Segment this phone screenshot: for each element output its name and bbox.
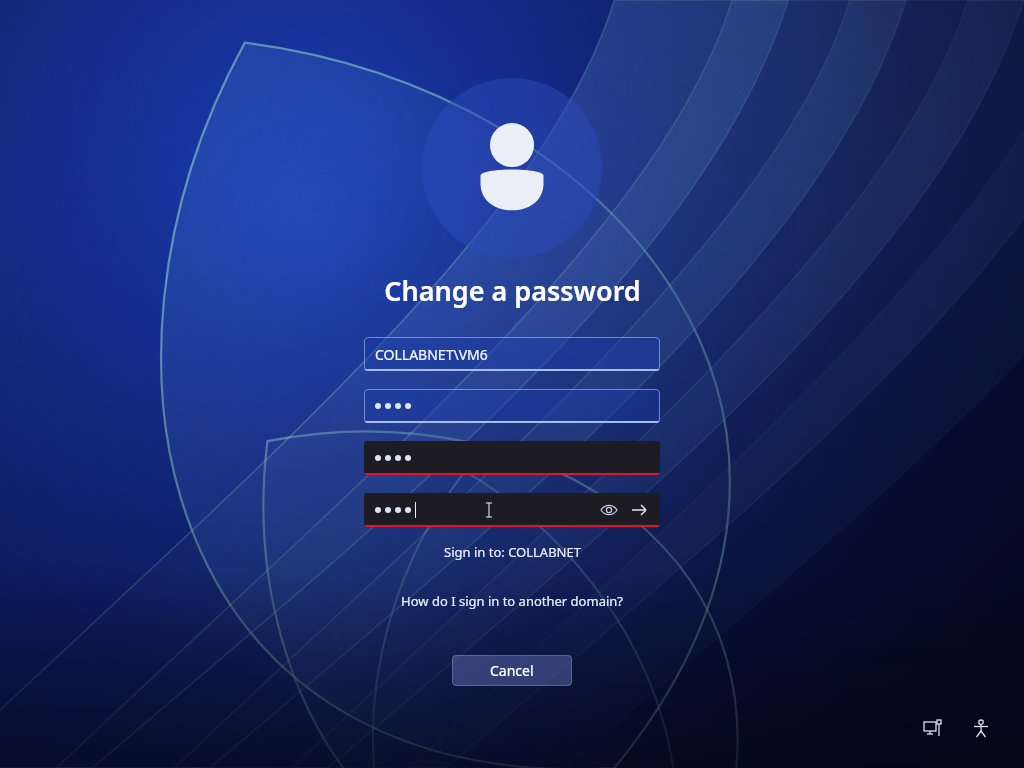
button[interactable] <box>364 441 660 475</box>
button[interactable]: Show password <box>364 493 660 527</box>
button[interactable]: How do I sign in to another domain? <box>395 589 629 613</box>
button[interactable]: Accessibility <box>964 712 998 746</box>
button[interactable]: Show password <box>594 495 624 525</box>
button[interactable]: Submit <box>624 495 654 525</box>
button[interactable] <box>364 389 660 423</box>
staticText: How do I sign in to another domain? <box>401 592 623 610</box>
staticText: COLLABNET\VM6 <box>375 345 488 364</box>
staticText: Cancel <box>490 661 534 680</box>
staticText: Sign in to: COLLABNET <box>444 543 581 561</box>
button[interactable]: Network <box>916 712 950 746</box>
button[interactable]: Cancel <box>452 655 572 686</box>
staticText: Change a password <box>384 272 641 309</box>
button[interactable]: COLLABNET\VM6 <box>364 337 660 371</box>
